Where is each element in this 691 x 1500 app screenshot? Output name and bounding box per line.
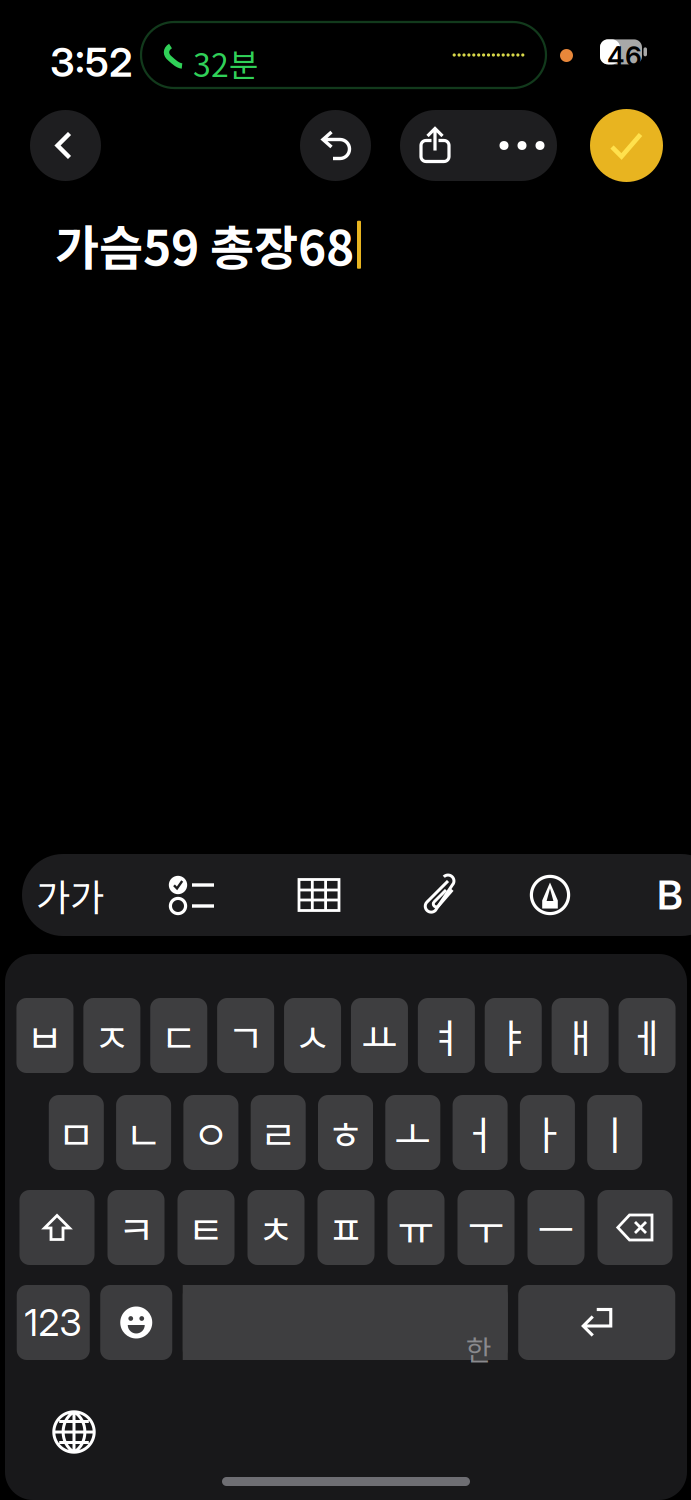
button[interactable]: Next keyboard: [48, 1406, 100, 1458]
button[interactable]: 한: [183, 1285, 508, 1360]
button[interactable]: Attach: [382, 854, 494, 936]
button[interactable]: ㅇ: [183, 1095, 238, 1170]
staticText: ㅔ: [628, 1006, 665, 1064]
button[interactable]: ㅈ: [83, 998, 140, 1073]
button[interactable]: [100, 1285, 172, 1360]
staticText: 가슴59 총장68: [55, 210, 354, 279]
button[interactable]: Back: [30, 110, 101, 181]
staticText: ㅈ: [93, 1006, 130, 1064]
button[interactable]: [19, 1190, 94, 1265]
button[interactable]: ㅅ: [284, 998, 341, 1073]
button[interactable]: ㅜ: [457, 1190, 514, 1265]
button[interactable]: ㅣ: [587, 1095, 642, 1170]
button[interactable]: Share: [400, 110, 470, 181]
staticText: 3:52: [50, 38, 133, 86]
staticText: ㅁ: [58, 1103, 95, 1161]
staticText: ㅣ: [596, 1103, 633, 1161]
staticText: ㅍ: [327, 1198, 364, 1256]
staticText: B: [657, 871, 683, 919]
staticText: 한: [466, 1328, 492, 1368]
button[interactable]: Bold: [614, 854, 691, 936]
staticText: ㅊ: [257, 1198, 294, 1256]
staticText: ㅗ: [394, 1103, 431, 1161]
button[interactable]: ㅛ: [351, 998, 408, 1073]
button[interactable]: ㅊ: [247, 1190, 304, 1265]
staticText: ㅛ: [361, 1006, 398, 1064]
button[interactable]: ㅏ: [520, 1095, 575, 1170]
button[interactable]: 123: [17, 1285, 90, 1360]
staticText: ㅓ: [462, 1103, 499, 1161]
staticText: ㅇ: [192, 1103, 229, 1161]
staticText: ㅕ: [428, 1006, 465, 1064]
button[interactable]: ㅌ: [177, 1190, 234, 1265]
button[interactable]: Markup: [494, 854, 606, 936]
button[interactable]: ㅂ: [16, 998, 73, 1073]
staticText: 46: [607, 40, 642, 73]
button[interactable]: ㅕ: [418, 998, 475, 1073]
staticText: ㄹ: [260, 1103, 297, 1161]
button[interactable]: Done: [590, 109, 663, 182]
staticText: ㅡ: [537, 1198, 574, 1256]
button[interactable]: [597, 1190, 672, 1265]
button[interactable]: ㄹ: [251, 1095, 306, 1170]
staticText: ㅅ: [294, 1006, 331, 1064]
button[interactable]: ㅎ: [318, 1095, 373, 1170]
button[interactable]: ㄴ: [116, 1095, 171, 1170]
button[interactable]: Checklist: [136, 854, 248, 936]
button[interactable]: ㅐ: [552, 998, 609, 1073]
button[interactable]: ㅡ: [527, 1190, 584, 1265]
staticText: ㄴ: [125, 1103, 162, 1161]
button[interactable]: ㅋ: [107, 1190, 164, 1265]
staticText: ㅂ: [26, 1006, 63, 1064]
button[interactable]: ㄱ: [217, 998, 274, 1073]
button[interactable]: ㅁ: [49, 1095, 104, 1170]
button[interactable]: [518, 1285, 675, 1360]
button[interactable]: ㅔ: [618, 998, 675, 1073]
staticText: ㅜ: [467, 1198, 504, 1256]
staticText: ㅑ: [495, 1006, 532, 1064]
button[interactable]: Undo: [300, 110, 371, 181]
button[interactable]: Table: [263, 854, 375, 936]
button[interactable]: 가가: [14, 854, 126, 936]
staticText: ㅎ: [327, 1103, 364, 1161]
button[interactable]: ㅍ: [317, 1190, 374, 1265]
staticText: 123: [24, 1300, 82, 1345]
button[interactable]: ㅑ: [485, 998, 542, 1073]
staticText: ㅏ: [529, 1103, 566, 1161]
button[interactable]: ㅗ: [385, 1095, 440, 1170]
staticText: ㅋ: [117, 1198, 154, 1256]
staticText: ㅐ: [562, 1006, 599, 1064]
staticText: 가가: [36, 868, 104, 922]
staticText: 32분: [193, 40, 258, 86]
staticText: ㅌ: [187, 1198, 224, 1256]
staticText: ㄱ: [227, 1006, 264, 1064]
button[interactable]: ㄷ: [150, 998, 207, 1073]
staticText: ㄷ: [160, 1006, 197, 1064]
button[interactable]: ㅓ: [453, 1095, 508, 1170]
button[interactable]: More: [487, 110, 557, 181]
button[interactable]: ㅠ: [387, 1190, 444, 1265]
staticText: ㅠ: [397, 1198, 434, 1256]
